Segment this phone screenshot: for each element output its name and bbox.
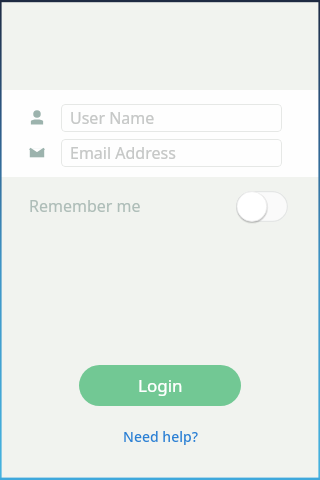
button[interactable]: Remember me — [0, 177, 320, 235]
button[interactable]: Email Address — [61, 139, 282, 167]
button[interactable]: Login — [79, 365, 241, 406]
staticText: Need help? — [123, 427, 198, 446]
other: Email address — [28, 144, 46, 162]
staticText: Email Address — [70, 142, 176, 164]
button[interactable]: Remember me toggle — [236, 191, 288, 222]
staticText: User Name — [70, 107, 155, 129]
button[interactable]: User Name — [61, 104, 282, 132]
staticText: Login — [138, 374, 183, 397]
staticText: Remember me — [29, 195, 141, 217]
other: User name — [28, 109, 46, 127]
button[interactable]: Need help? — [113, 423, 208, 450]
